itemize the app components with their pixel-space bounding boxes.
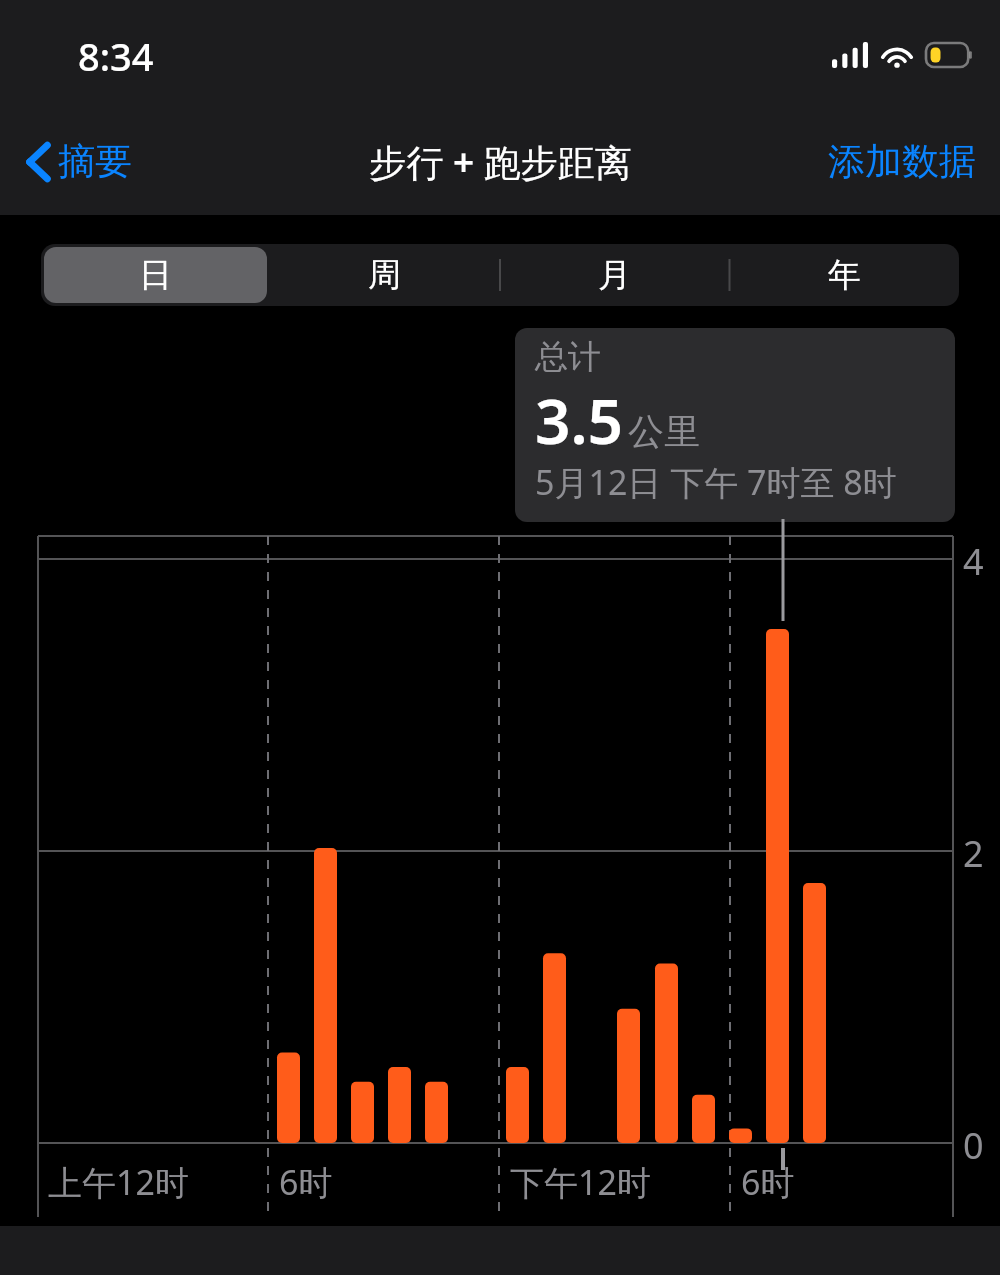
button[interactable]: 周	[270, 244, 499, 306]
staticText: 下午12时	[510, 1159, 651, 1205]
button[interactable]: 月	[499, 244, 729, 306]
staticText: 周	[368, 254, 401, 296]
staticText: 5月12日 下午 7时至 8时	[535, 459, 897, 505]
staticText: 总计	[535, 336, 601, 378]
staticText: 上午12时	[48, 1159, 189, 1205]
staticText: 日	[139, 254, 172, 296]
staticText: 年	[828, 254, 861, 296]
staticText: 公里	[628, 409, 700, 454]
staticText: 2	[963, 829, 984, 878]
button[interactable]: 日	[41, 244, 270, 306]
staticText: 3.5	[535, 378, 624, 462]
button[interactable]: 摘要	[0, 130, 148, 193]
staticText: 8:34	[78, 30, 154, 82]
staticText: 4	[963, 537, 984, 586]
button[interactable]: 添加数据	[804, 128, 1000, 195]
staticText: 步行 + 跑步距离	[369, 136, 632, 187]
staticText: 添加数据	[828, 138, 976, 185]
button[interactable]: 年	[729, 244, 959, 306]
staticText: 月	[598, 254, 631, 296]
staticText: 6时	[279, 1159, 333, 1205]
staticText: 摘要	[58, 138, 132, 185]
staticText: 6时	[741, 1159, 795, 1205]
staticText: 0	[963, 1121, 984, 1170]
